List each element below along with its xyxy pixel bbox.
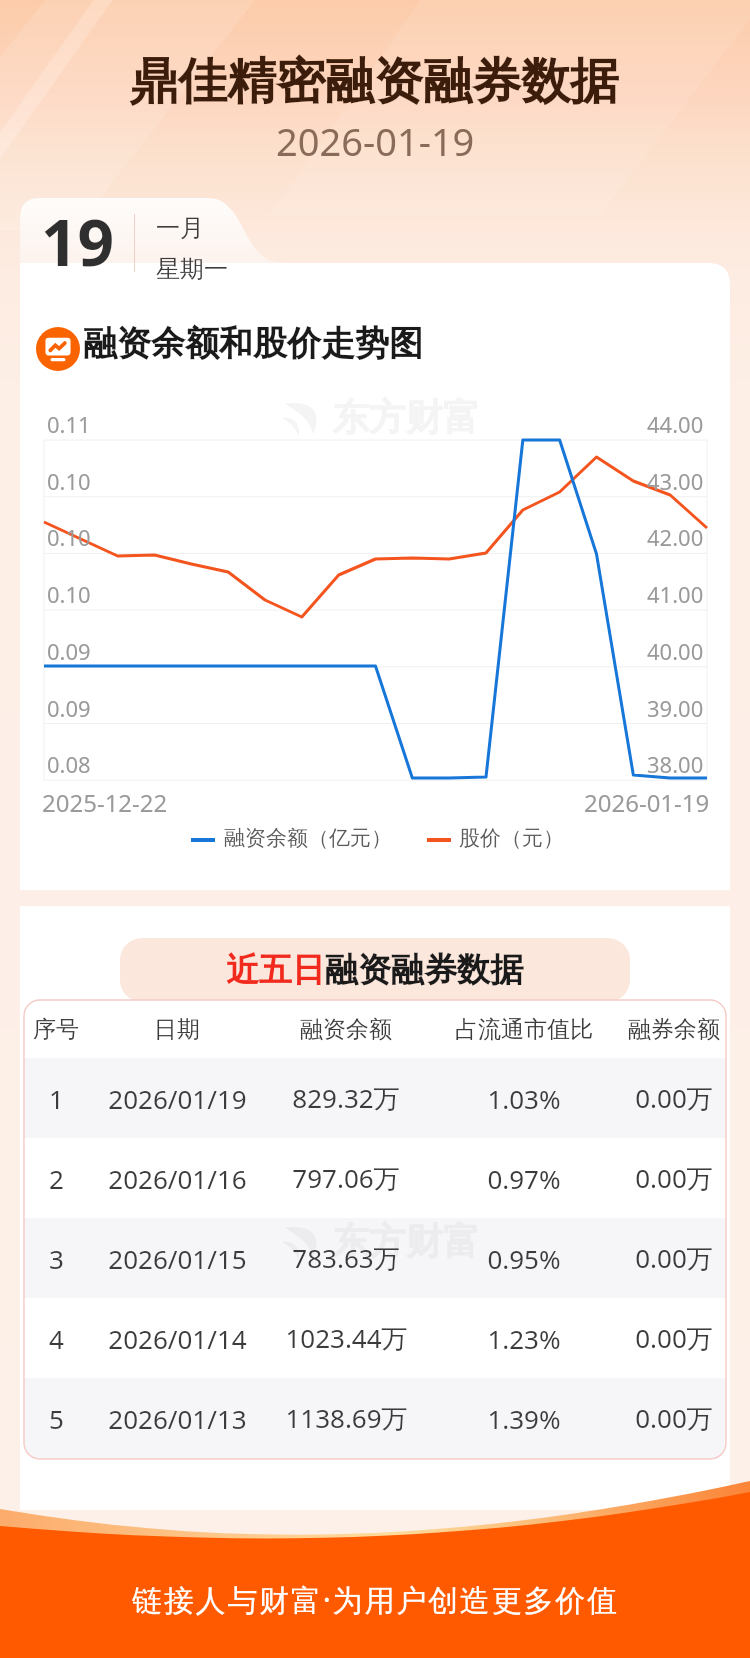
staticText: 一月	[156, 213, 204, 243]
staticText: 0.00万	[635, 1160, 713, 1196]
staticText: 0.11	[47, 409, 91, 439]
staticText: 0.09	[47, 693, 91, 723]
staticText: 0.10	[47, 579, 91, 609]
staticText: 829.32万	[292, 1080, 400, 1116]
staticText: 39.00	[647, 693, 704, 723]
staticText: 2026/01/16	[108, 1161, 247, 1196]
staticText: 0.08	[47, 749, 91, 779]
staticText: 0.10	[47, 522, 91, 552]
button[interactable]: 1	[24, 1058, 726, 1138]
other: Trend chart	[36, 327, 80, 371]
staticText: 41.00	[647, 579, 704, 609]
staticText: 2025-12-22	[42, 786, 168, 819]
button[interactable]: 4	[24, 1298, 726, 1378]
staticText: 0.00万	[635, 1320, 713, 1356]
staticText: 鼎佳精密融资融券数据	[129, 51, 619, 113]
staticText: 2026-01-19	[584, 786, 710, 819]
staticText: 融券余额	[628, 1015, 720, 1044]
staticText: 星期一	[156, 254, 228, 284]
button[interactable]: 3	[24, 1218, 726, 1298]
staticText: 融资余额	[300, 1015, 392, 1044]
staticText: 19	[41, 198, 115, 285]
staticText: 1138.69万	[285, 1400, 408, 1436]
staticText: 2026/01/13	[108, 1401, 247, 1436]
staticText: 40.00	[647, 636, 704, 666]
staticText: 797.06万	[292, 1160, 400, 1196]
staticText: 0.09	[47, 636, 91, 666]
staticText: 2	[49, 1161, 64, 1196]
staticText: 1.39%	[487, 1401, 561, 1436]
staticText: 东方财富	[332, 394, 480, 441]
staticText: 38.00	[647, 749, 704, 779]
staticText: 2026-01-19	[276, 115, 475, 167]
staticText: 0.00万	[635, 1240, 713, 1276]
staticText: 0.00万	[635, 1400, 713, 1436]
staticText: 链接人与财富·为用户创造更多价值	[132, 1579, 619, 1620]
staticText: 42.00	[647, 522, 704, 552]
staticText: 融资余额（亿元）	[224, 825, 392, 851]
staticText: 占流通市值比	[455, 1015, 593, 1044]
staticText: 2026/01/15	[108, 1241, 247, 1276]
staticText: 4	[49, 1321, 64, 1356]
staticText: 近五日融资融券数据	[226, 949, 523, 991]
staticText: 0.10	[47, 466, 91, 496]
staticText: 783.63万	[292, 1240, 400, 1276]
staticText: 0.97%	[487, 1161, 561, 1196]
staticText: 43.00	[647, 466, 704, 496]
staticText: 0.00万	[635, 1080, 713, 1116]
staticText: 1.23%	[487, 1321, 561, 1356]
staticText: 1	[49, 1081, 64, 1116]
button[interactable]: 2	[24, 1138, 726, 1218]
button[interactable]: 5	[24, 1378, 726, 1458]
staticText: 1023.44万	[285, 1320, 408, 1356]
staticText: 5	[49, 1401, 64, 1436]
staticText: 1.03%	[487, 1081, 561, 1116]
staticText: 融资余额和股价走势图	[83, 322, 423, 365]
staticText: 2026/01/19	[108, 1081, 247, 1116]
staticText: 股价（元）	[459, 825, 564, 851]
staticText: 0.95%	[487, 1241, 561, 1276]
staticText: 日期	[154, 1015, 200, 1044]
staticText: 序号	[33, 1015, 79, 1044]
staticText: 2026/01/14	[108, 1321, 247, 1356]
staticText: 3	[49, 1241, 64, 1276]
staticText: 44.00	[647, 409, 704, 439]
staticText: 东方财富	[332, 1218, 480, 1265]
